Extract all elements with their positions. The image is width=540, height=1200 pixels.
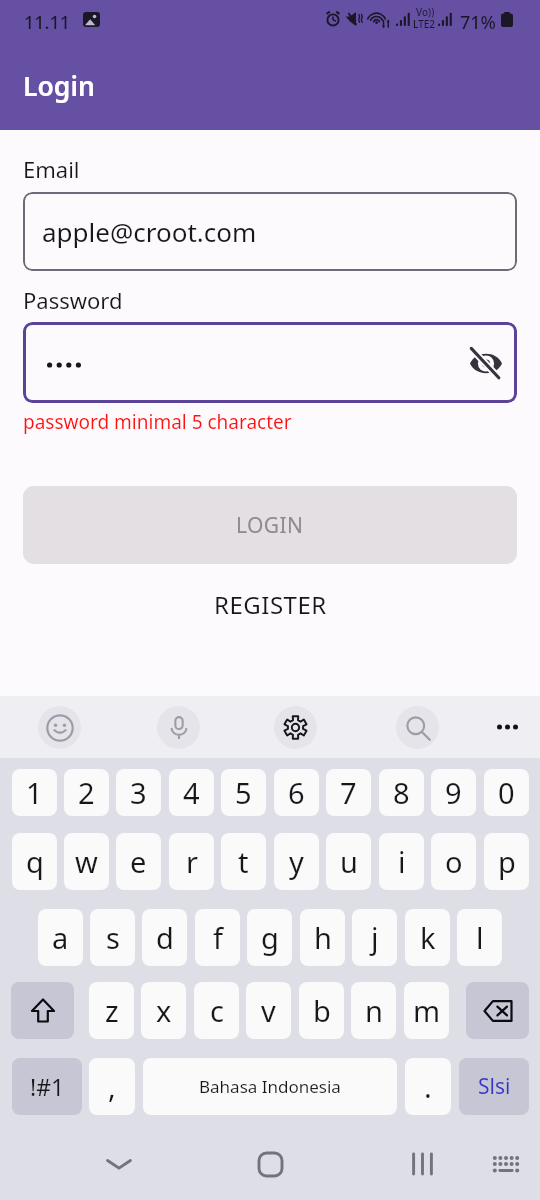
button[interactable]: v	[246, 982, 291, 1039]
button[interactable]: u	[326, 833, 371, 890]
staticText: 0	[498, 773, 515, 812]
staticText: 11.11	[24, 10, 71, 35]
staticText: g	[261, 918, 279, 957]
staticText: Slsi	[478, 1072, 511, 1101]
button[interactable]: k	[405, 909, 450, 966]
button[interactable]: j	[352, 909, 397, 966]
button[interactable]: q	[12, 833, 57, 890]
button[interactable]: s	[90, 909, 135, 966]
button[interactable]: 2	[64, 769, 109, 816]
button[interactable]: n	[351, 982, 396, 1039]
button[interactable]: Recent apps	[398, 1140, 446, 1188]
staticText: 8	[393, 773, 410, 812]
staticText: Bahasa Indonesia	[199, 1075, 341, 1098]
button[interactable]: Emoji	[38, 706, 81, 749]
staticText: f	[213, 918, 223, 957]
staticText: 3	[130, 773, 147, 812]
button[interactable]: Change keyboard	[482, 1140, 530, 1188]
button[interactable]: apple@croot.com	[23, 192, 517, 271]
staticText: LTE2	[413, 17, 436, 31]
staticText: r	[186, 842, 198, 881]
button[interactable]: .	[405, 1058, 451, 1115]
staticText: p	[498, 842, 516, 881]
staticText: h	[314, 918, 332, 957]
button[interactable]: f	[195, 909, 240, 966]
staticText: i	[398, 842, 406, 881]
button[interactable]: REGISTER	[23, 580, 517, 628]
button[interactable]: h	[300, 909, 345, 966]
button[interactable]: b	[299, 982, 344, 1039]
staticText: e	[130, 842, 147, 881]
button[interactable]: Search	[396, 706, 439, 749]
staticText: d	[156, 918, 174, 957]
button[interactable]: 7	[326, 769, 371, 816]
button[interactable]: Hide keyboard	[95, 1140, 143, 1188]
staticText: q	[26, 842, 44, 881]
staticText: 6	[288, 773, 305, 812]
staticText: Password	[23, 285, 123, 315]
button[interactable]: l	[457, 909, 502, 966]
button[interactable]: Settings	[274, 706, 317, 749]
button[interactable]: t	[221, 833, 266, 890]
button[interactable]: 4	[169, 769, 214, 816]
staticText: o	[445, 842, 463, 881]
button[interactable]: c	[194, 982, 239, 1039]
button[interactable]: Bahasa Indonesia	[143, 1058, 397, 1115]
button[interactable]: a	[38, 909, 83, 966]
staticText: j	[371, 918, 379, 957]
button[interactable]: Shift	[11, 982, 74, 1039]
staticText: x	[156, 991, 172, 1030]
button[interactable]: m	[404, 982, 449, 1039]
staticText: v	[261, 991, 276, 1030]
button[interactable]: p	[484, 833, 529, 890]
button[interactable]: i	[379, 833, 424, 890]
button[interactable]: 8	[379, 769, 424, 816]
button[interactable]: 9	[431, 769, 476, 816]
button[interactable]: e	[116, 833, 161, 890]
button[interactable]: x	[141, 982, 186, 1039]
button[interactable]: z	[89, 982, 134, 1039]
staticText: n	[365, 991, 383, 1030]
staticText: l	[476, 918, 484, 957]
button[interactable]: Hide password	[23, 322, 517, 403]
staticText: 9	[445, 773, 462, 812]
staticText: password minimal 5 character	[23, 409, 292, 435]
staticText: u	[340, 842, 358, 881]
button[interactable]: 1	[12, 769, 57, 816]
button[interactable]: 0	[484, 769, 529, 816]
button[interactable]: More options	[483, 703, 531, 751]
button[interactable]: ,	[89, 1058, 135, 1115]
staticText: .	[424, 1067, 432, 1106]
button[interactable]: LOGIN	[23, 486, 517, 564]
staticText: LOGIN	[236, 511, 304, 540]
button[interactable]: r	[169, 833, 214, 890]
staticText: ,	[108, 1067, 116, 1106]
staticText: REGISTER	[214, 588, 327, 621]
staticText: Vo))	[416, 5, 435, 19]
button[interactable]: 6	[274, 769, 319, 816]
button[interactable]: o	[431, 833, 476, 890]
button[interactable]: Home	[246, 1140, 294, 1188]
button[interactable]: !#1	[12, 1058, 82, 1115]
staticText: w	[75, 842, 98, 881]
button[interactable]: w	[64, 833, 109, 890]
staticText: !#1	[30, 1071, 65, 1102]
staticText: s	[106, 918, 120, 957]
staticText: Email	[23, 154, 80, 184]
button[interactable]: y	[274, 833, 319, 890]
button[interactable]: Backspace	[466, 982, 529, 1039]
staticText: b	[313, 991, 331, 1030]
button[interactable]: Voice input	[157, 706, 200, 749]
button[interactable]: g	[247, 909, 292, 966]
staticText: t	[238, 842, 249, 881]
button[interactable]: 5	[221, 769, 266, 816]
button[interactable]: Slsi	[459, 1058, 529, 1115]
staticText: 4	[183, 773, 200, 812]
staticText: 7	[340, 773, 357, 812]
button[interactable]: Hide password	[464, 341, 508, 385]
button[interactable]: 3	[116, 769, 161, 816]
staticText: k	[420, 918, 436, 957]
staticText: 2	[78, 773, 95, 812]
button[interactable]: d	[142, 909, 187, 966]
staticText: 5	[235, 773, 252, 812]
